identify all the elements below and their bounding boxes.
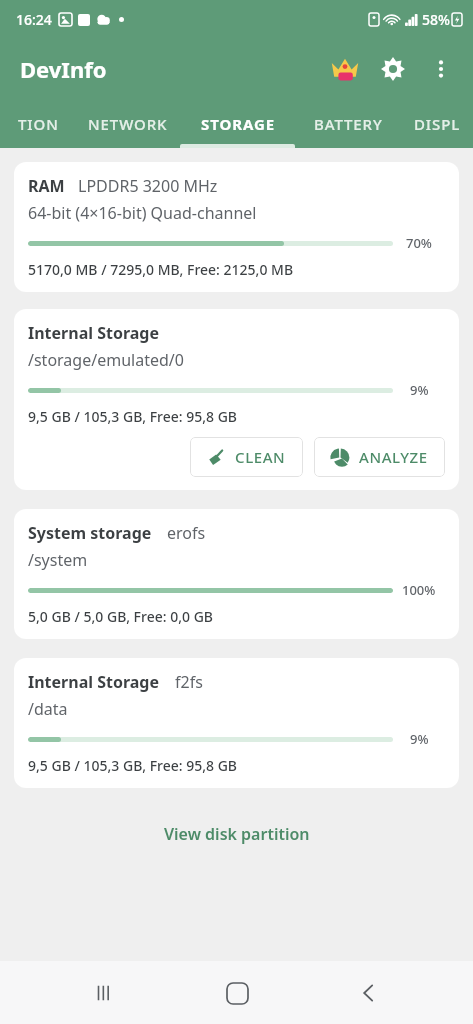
button[interactable]: Home bbox=[209, 965, 265, 1021]
staticText: 9% bbox=[410, 730, 429, 748]
button[interactable]: TION bbox=[0, 100, 76, 148]
staticText: Internal Storage bbox=[28, 322, 160, 344]
staticText: LPDDR5 3200 MHz bbox=[78, 175, 218, 197]
staticText: System storage bbox=[28, 522, 152, 544]
staticText: TION bbox=[18, 114, 59, 134]
staticText: 9,5 GB / 105,3 GB, Free: 95,8 GB bbox=[28, 756, 238, 775]
staticText: CLEAN bbox=[235, 447, 286, 467]
staticText: 16:24 bbox=[16, 10, 52, 29]
staticText: DISPL bbox=[414, 114, 461, 134]
staticText: DevInfo bbox=[20, 54, 107, 84]
staticText: 9,5 GB / 105,3 GB, Free: 95,8 GB bbox=[28, 407, 238, 426]
button[interactable]: More options bbox=[417, 45, 465, 93]
staticText: 5,0 GB / 5,0 GB, Free: 0,0 GB bbox=[28, 607, 213, 626]
button[interactable]: Recent apps bbox=[76, 965, 132, 1021]
staticText: /storage/emulated/0 bbox=[28, 349, 184, 371]
staticText: Internal Storage bbox=[28, 671, 160, 693]
staticText: NETWORK bbox=[88, 114, 168, 134]
staticText: STORAGE bbox=[201, 114, 275, 134]
button[interactable]: System storage bbox=[14, 509, 459, 639]
button[interactable]: STORAGE bbox=[180, 100, 295, 148]
staticText: /system bbox=[28, 549, 88, 571]
button[interactable]: Back bbox=[341, 965, 397, 1021]
button[interactable]: ANALYZE bbox=[314, 437, 445, 477]
staticText: BATTERY bbox=[314, 114, 383, 134]
button[interactable]: NETWORK bbox=[76, 100, 180, 148]
staticText: f2fs bbox=[175, 671, 203, 693]
staticText: 70% bbox=[406, 234, 432, 252]
staticText: 5170,0 MB / 7295,0 MB, Free: 2125,0 MB bbox=[28, 260, 294, 279]
button[interactable]: BATTERY bbox=[295, 100, 401, 148]
staticText: 64-bit (4×16-bit) Quad-channel bbox=[28, 202, 257, 224]
button[interactable]: Settings bbox=[369, 45, 417, 93]
button[interactable]: Internal Storage bbox=[14, 309, 459, 490]
button[interactable]: DISPL bbox=[401, 100, 473, 148]
staticText: erofs bbox=[167, 522, 206, 544]
button[interactable]: View disk partition bbox=[0, 817, 473, 851]
button[interactable]: CLEAN bbox=[190, 437, 303, 477]
button[interactable]: Go Pro bbox=[321, 45, 369, 93]
staticText: /data bbox=[28, 698, 68, 720]
button[interactable]: Internal Storage bbox=[14, 658, 459, 788]
staticText: 100% bbox=[402, 581, 436, 599]
staticText: 58% bbox=[422, 10, 450, 29]
staticText: ANALYZE bbox=[359, 447, 428, 467]
staticText: 9% bbox=[410, 381, 429, 399]
staticText: View disk partition bbox=[164, 823, 310, 845]
button[interactable]: RAM bbox=[14, 162, 459, 292]
staticText: RAM bbox=[28, 175, 65, 197]
